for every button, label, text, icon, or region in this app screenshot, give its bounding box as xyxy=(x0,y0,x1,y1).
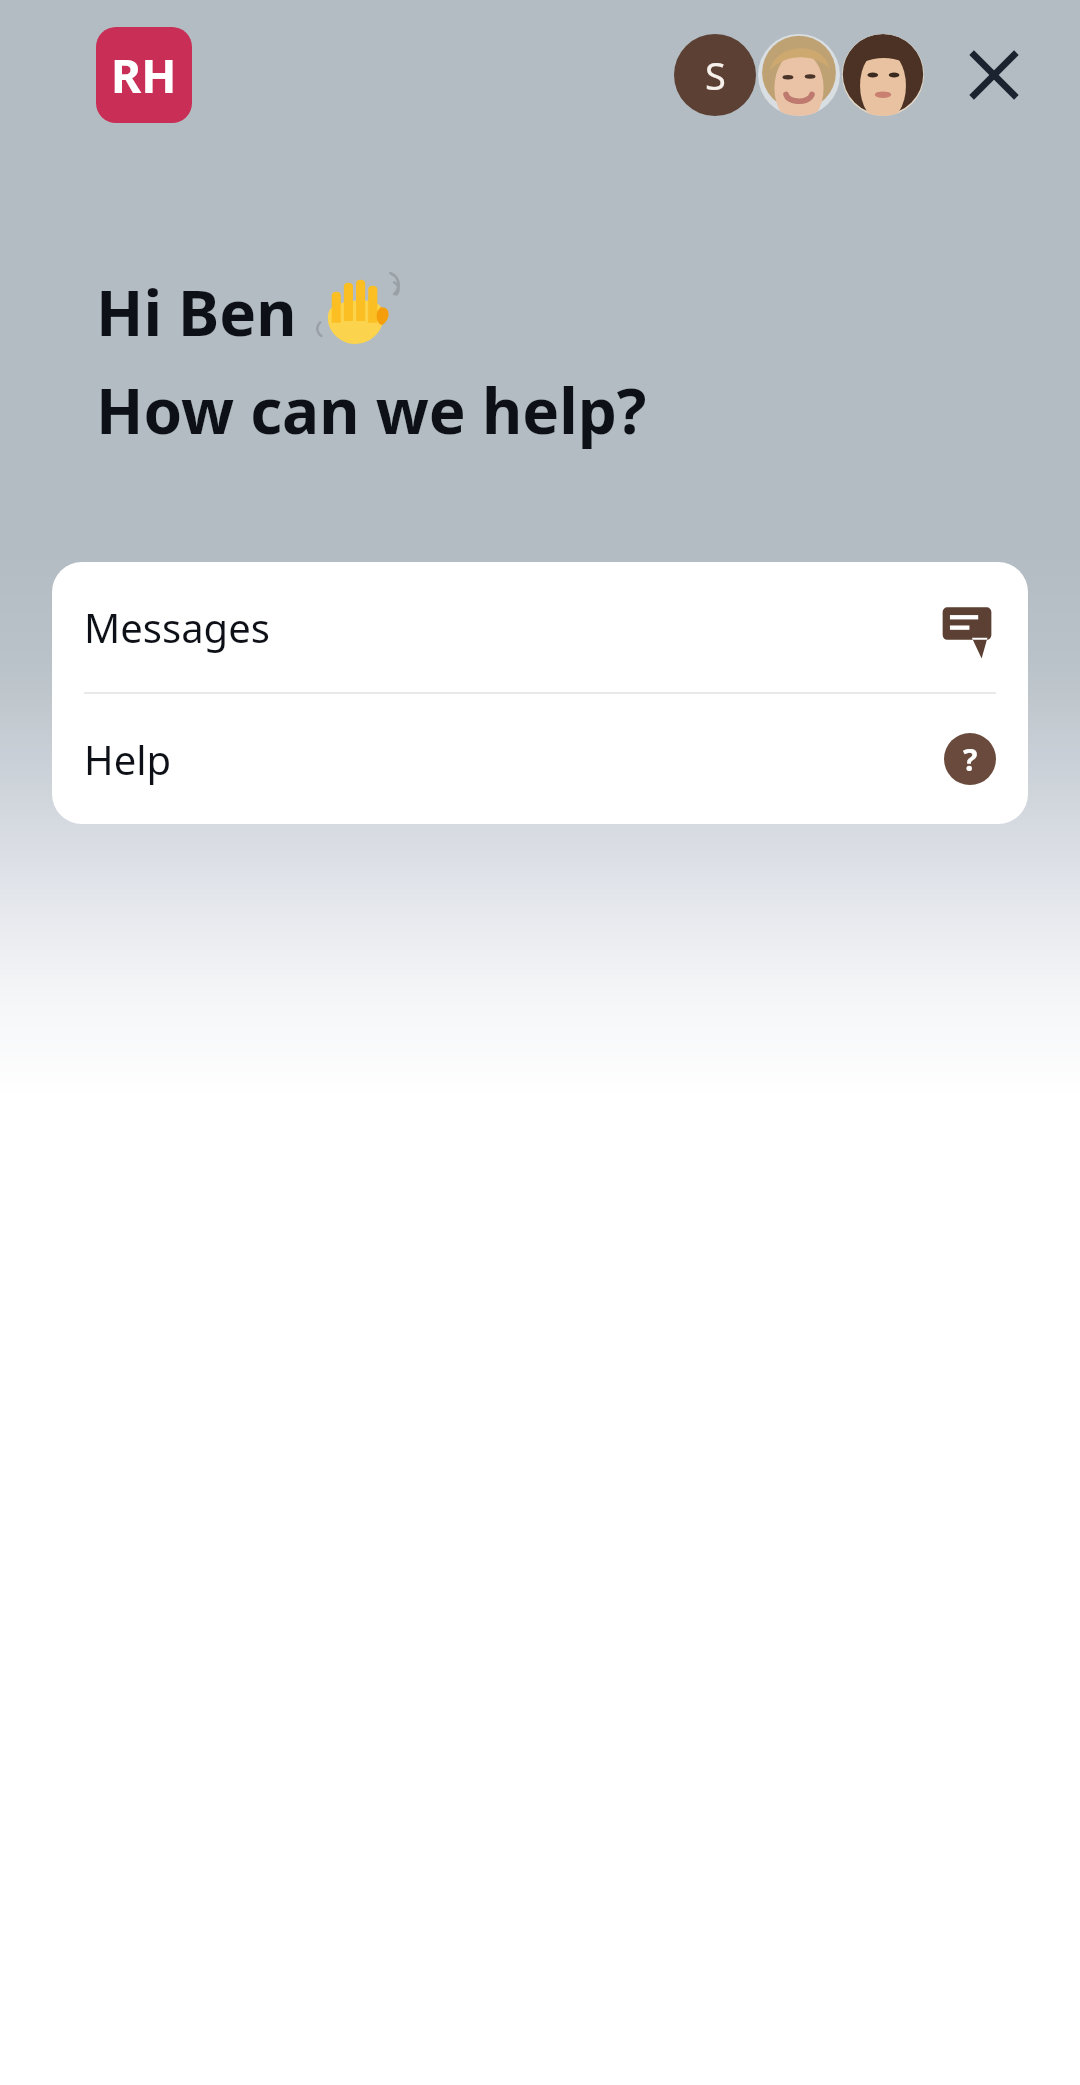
staticText: Hi Ben xyxy=(96,270,297,354)
button[interactable]: RH xyxy=(96,27,192,123)
staticText: RH xyxy=(111,44,177,107)
staticText: How can we help? xyxy=(96,368,647,452)
staticText: Messages xyxy=(84,600,938,654)
button[interactable]: Teammate S xyxy=(674,34,756,116)
staticText: S xyxy=(705,49,726,101)
button[interactable]: Teammate avatar xyxy=(758,34,840,116)
button[interactable]: Help xyxy=(52,694,1028,824)
button[interactable]: Messages xyxy=(52,562,1028,692)
button[interactable]: Teammate avatar xyxy=(842,34,924,116)
button[interactable]: Close xyxy=(946,27,1042,123)
staticText: ? xyxy=(963,739,978,780)
staticText: Help xyxy=(84,732,944,786)
